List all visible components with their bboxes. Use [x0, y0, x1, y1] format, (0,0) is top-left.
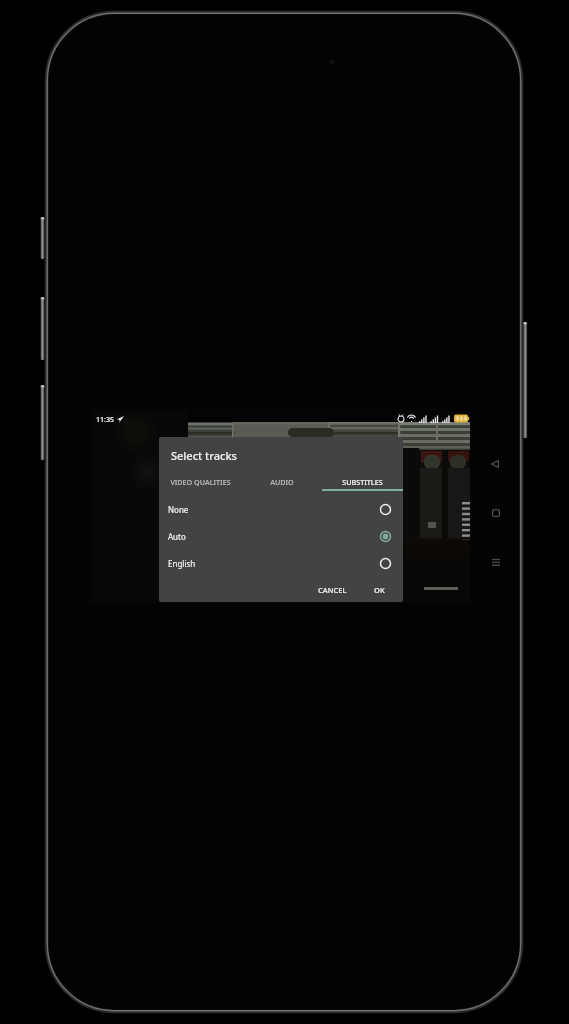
staticText: CANCEL [318, 585, 347, 595]
button[interactable]: Auto [159, 523, 403, 550]
button[interactable]: VIDEO QUALITIES [159, 472, 241, 491]
staticText: Auto [168, 531, 186, 542]
button[interactable]: English [159, 550, 403, 577]
button[interactable]: None [159, 496, 403, 523]
staticText: OK [374, 585, 385, 595]
button[interactable]: AUDIO [241, 472, 322, 491]
staticText: English [168, 558, 196, 569]
button[interactable]: SUBSTITLES [322, 472, 403, 491]
button[interactable]: Home [487, 504, 504, 521]
staticText: SUBSTITLES [342, 477, 383, 487]
button[interactable]: OK [369, 581, 390, 599]
staticText: AUDIO [270, 477, 294, 487]
staticText: Select tracks [171, 448, 237, 463]
staticText: 11:35 [96, 415, 114, 425]
button[interactable]: CANCEL [313, 581, 352, 599]
button[interactable]: Recent apps [487, 553, 504, 570]
staticText: VIDEO QUALITIES [170, 477, 231, 487]
staticText: None [168, 504, 189, 515]
button[interactable]: Back [486, 455, 503, 472]
